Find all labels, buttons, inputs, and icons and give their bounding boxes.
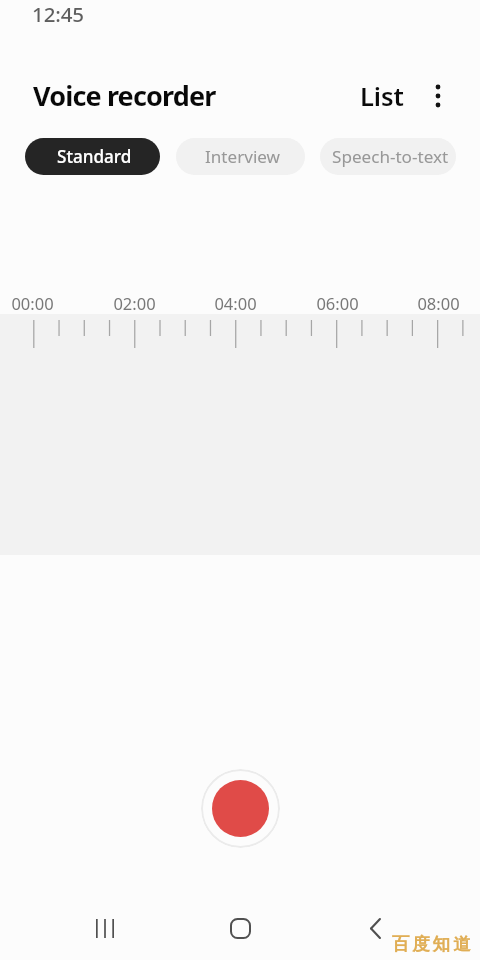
button[interactable]: Record: [201, 769, 280, 848]
button[interactable]: Interview: [176, 138, 305, 175]
button[interactable]: Speech-to-text: [320, 138, 456, 175]
button[interactable]: List: [348, 76, 416, 116]
staticText: Voice recorder: [33, 77, 216, 114]
staticText: 04:00: [214, 292, 257, 314]
staticText: 08:00: [417, 292, 460, 314]
button[interactable]: Recents: [80, 904, 129, 952]
staticText: 12:45: [32, 0, 84, 28]
staticText: Interview: [205, 145, 281, 168]
staticText: List: [360, 79, 404, 114]
staticText: 00:00: [11, 292, 54, 314]
staticText: 百度知道: [392, 933, 474, 955]
staticText: 06:00: [316, 292, 359, 314]
staticText: Speech-to-text: [332, 145, 449, 168]
staticText: 02:00: [113, 292, 156, 314]
button[interactable]: Back: [351, 904, 399, 952]
button[interactable]: Home: [216, 904, 264, 952]
button[interactable]: Standard: [25, 138, 160, 175]
staticText: Standard: [57, 145, 132, 168]
button[interactable]: More options: [418, 76, 458, 116]
